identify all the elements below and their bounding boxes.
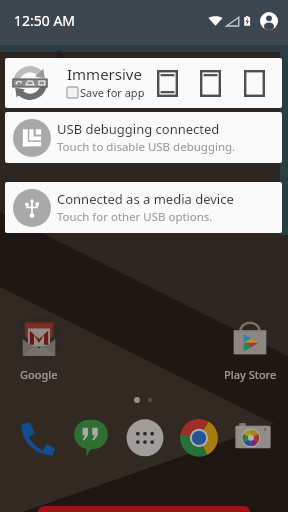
staticText: Touch to disable USB debugging.: [57, 139, 236, 155]
button[interactable]: Immersive mode option: [152, 66, 182, 100]
button[interactable]: Camera: [232, 416, 274, 458]
button[interactable]: Immersive mode option: [239, 66, 269, 100]
staticText: Google: [20, 367, 58, 382]
button[interactable]: Hangouts: [70, 416, 112, 458]
staticText: Connected as a media device: [57, 190, 234, 208]
button[interactable]: Google: [6, 315, 72, 382]
staticText: Save for app: [80, 85, 145, 100]
staticText: USB debugging connected: [57, 120, 220, 138]
staticText: Touch for other USB options.: [57, 209, 213, 225]
button[interactable]: Immersive: [5, 58, 282, 108]
button[interactable]: Play Store: [217, 315, 283, 382]
button[interactable]: Immersive mode option: [195, 66, 225, 100]
button[interactable]: Phone: [16, 416, 58, 458]
staticText: 12:50 AM: [14, 11, 76, 30]
staticText: Play Store: [224, 367, 277, 382]
button[interactable]: USB debugging connected: [5, 112, 282, 163]
button[interactable]: Save for app: [67, 85, 145, 100]
button[interactable]: Apps: [124, 416, 166, 458]
button[interactable]: Connected as a media device: [5, 182, 282, 233]
button[interactable]: Chrome: [178, 416, 220, 458]
staticText: Immersive: [67, 64, 142, 84]
